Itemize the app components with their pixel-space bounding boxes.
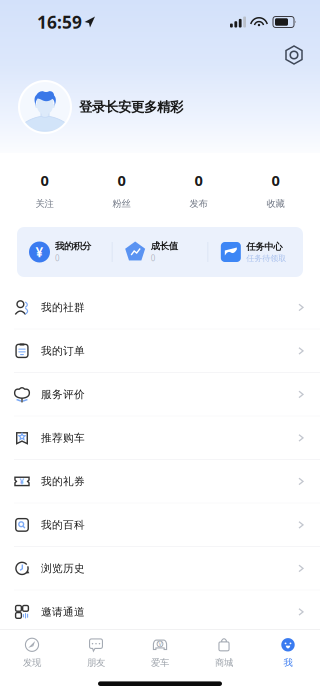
button[interactable]: 成长值 [113,240,207,264]
staticText: 爱车 [151,657,169,668]
staticText: ¥ [35,243,43,261]
button[interactable]: 0 [237,170,314,209]
staticText: 关注 [35,198,53,209]
staticText: 16:59 [37,10,82,33]
staticText: 0 [194,170,202,190]
button[interactable]: 0 [160,170,237,209]
button[interactable]: 朋友 [64,638,128,668]
staticText: 服务评价 [41,388,85,401]
button[interactable]: 我的百科 [0,503,320,547]
button[interactable]: 发现 [0,638,64,668]
button[interactable]: 服务评价 [0,373,320,416]
button[interactable]: 商城 [192,638,256,668]
staticText: 我的礼券 [41,475,85,488]
staticText: 邀请通道 [41,605,85,618]
button[interactable]: 浏览历史 [0,547,320,590]
staticText: 发布 [189,198,207,209]
staticText: 发现 [23,657,41,668]
staticText: 我的订单 [41,344,85,357]
staticText: 我的百科 [41,518,85,531]
button[interactable]: 我 [256,638,320,668]
staticText: 收藏 [266,198,284,209]
staticText: 浏览历史 [41,562,85,575]
button[interactable]: ¥ [17,240,112,264]
button[interactable]: V [128,638,192,668]
button[interactable]: Settings [281,41,307,69]
button[interactable]: 邀请通道 [0,590,320,634]
button[interactable]: 我的社群 [0,286,320,329]
staticText: 0 [117,170,125,190]
staticText: 0 [151,253,156,263]
staticText: 我 [283,657,292,668]
button[interactable]: 0 [6,170,83,209]
staticText: 朋友 [87,657,105,668]
staticText: V [158,640,161,647]
staticText: 商城 [215,657,233,668]
button[interactable]: ¥ [0,460,320,503]
staticText: 0 [271,170,279,190]
staticText: 任务中心 [246,241,282,252]
staticText: 粉丝 [112,198,130,209]
staticText: 我的积分 [55,240,91,252]
staticText: 任务待领取 [246,253,286,263]
button[interactable]: 0 [83,170,160,209]
staticText: ¥ [19,476,24,487]
button[interactable]: 推荐购车 [0,416,320,460]
staticText: 0 [55,253,60,263]
staticText: 成长值 [151,240,178,252]
button[interactable]: 我的订单 [0,329,320,373]
staticText: 0 [40,170,48,190]
staticText: 我的社群 [41,301,85,314]
staticText: 登录长安更多精彩 [79,99,183,115]
button[interactable]: 任务中心 [208,241,303,263]
staticText: 推荐购车 [41,431,85,444]
